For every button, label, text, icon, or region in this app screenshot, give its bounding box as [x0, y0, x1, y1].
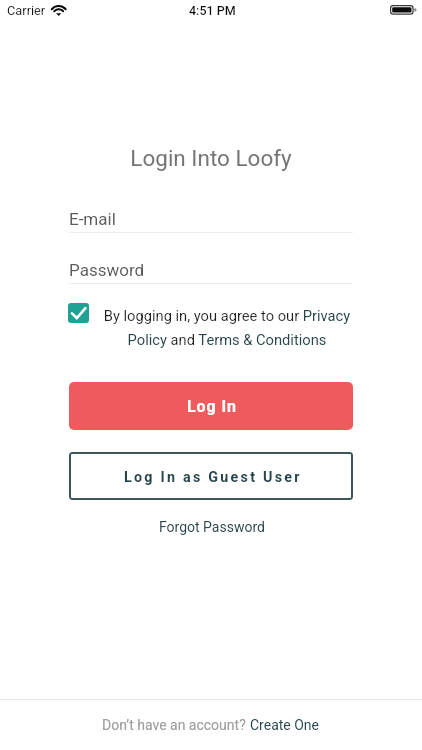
button[interactable]: Agree to terms — [68, 303, 89, 323]
button[interactable]: Don’t have an account? — [102, 717, 320, 733]
staticText: Don’t have an account? — [102, 717, 250, 733]
staticText: E-mail — [69, 209, 116, 229]
staticText: Password — [69, 260, 145, 280]
staticText: Carrier — [7, 3, 46, 18]
button[interactable]: E-mail — [69, 209, 353, 233]
button[interactable]: By logging in, you agree to our Privacy … — [101, 307, 353, 349]
staticText: Login Into Loofy — [0, 145, 422, 171]
staticText: Forgot Password — [159, 519, 265, 535]
staticText: Log In — [187, 397, 237, 416]
staticText: 4:51 PM — [189, 3, 236, 18]
staticText: Create One — [250, 717, 320, 733]
button[interactable]: Password — [69, 260, 353, 284]
button[interactable]: Forgot Password — [0, 515, 422, 539]
button[interactable]: Log In as Guest User — [69, 452, 353, 500]
staticText: Log In as Guest User — [124, 469, 302, 486]
button[interactable]: Log In — [69, 382, 353, 430]
